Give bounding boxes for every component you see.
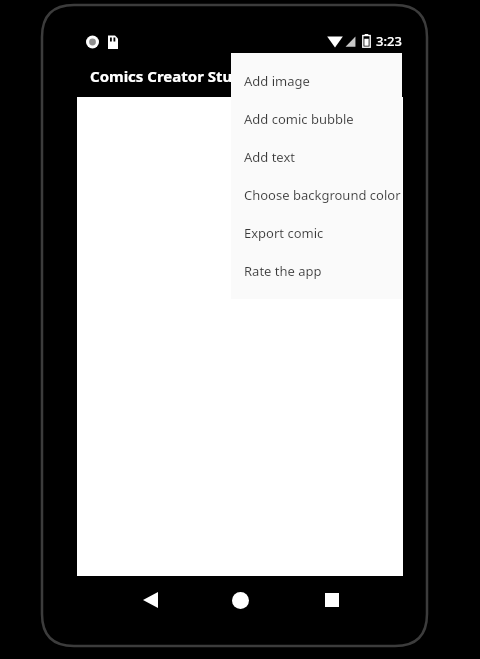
staticText: 3:23 [376, 32, 402, 50]
button[interactable] [77, 97, 403, 576]
staticText: Add comic bubble [244, 110, 354, 128]
button[interactable]: Recent apps [306, 578, 358, 622]
button[interactable]: Add comic bubble [231, 100, 402, 138]
button[interactable]: Add image [231, 62, 402, 100]
staticText: Add text [244, 148, 296, 166]
staticText: Export comic [244, 224, 324, 242]
button[interactable]: Rate the app [231, 252, 402, 290]
staticText: Choose background color [244, 186, 401, 204]
button[interactable]: Choose background color [231, 176, 402, 214]
staticText: Rate the app [244, 262, 322, 280]
staticText: Add image [244, 72, 310, 90]
button[interactable]: Export comic [231, 214, 402, 252]
button[interactable]: Add text [231, 138, 402, 176]
button[interactable]: Home [214, 578, 266, 622]
button[interactable]: Back [124, 578, 176, 622]
staticText: Comics Creator Studio [90, 66, 256, 86]
